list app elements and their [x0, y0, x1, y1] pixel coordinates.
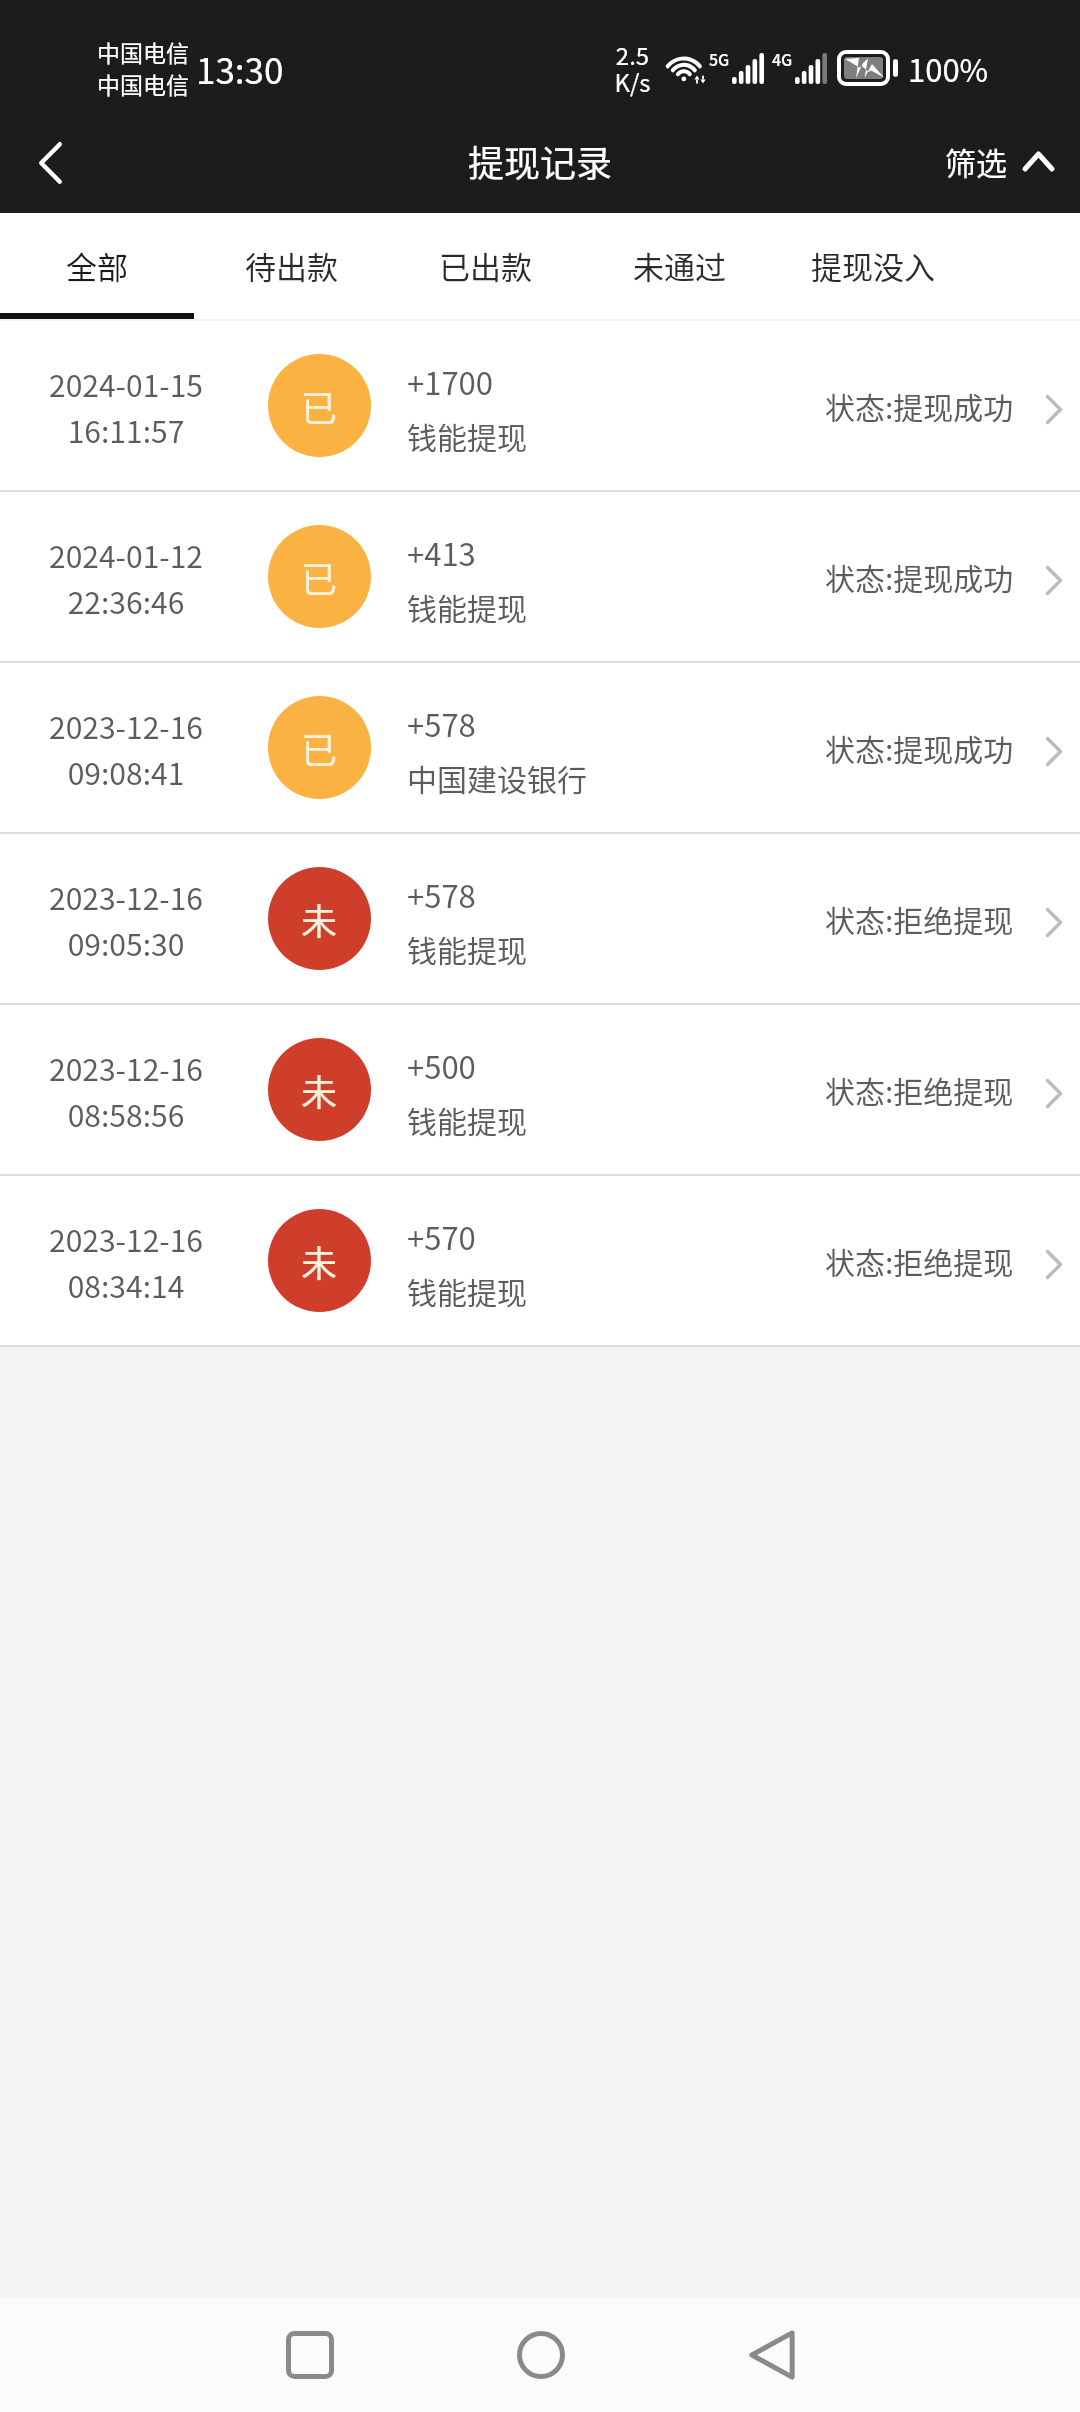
staticText: 中国电信 中国电信 — [97, 35, 189, 101]
button[interactable]: Recents — [194, 2298, 425, 2412]
staticText: +500 — [407, 1043, 476, 1088]
button[interactable]: 提现没入 — [776, 213, 970, 321]
staticText: 5G — [709, 47, 730, 70]
staticText: +578 — [407, 872, 476, 917]
staticText: 中国建设银行 — [407, 756, 587, 799]
staticText: 筛选 — [945, 139, 1007, 184]
staticText: 2023-12-16 08:34:14 — [0, 1217, 252, 1306]
staticText: 提现记录 — [468, 135, 613, 187]
staticText: 状态:提现成功 — [825, 384, 1014, 427]
staticText: 13:30 — [196, 43, 284, 94]
staticText: 钱能提现 — [407, 927, 527, 970]
button[interactable]: 2024-01-15 16:11:57 — [0, 321, 1080, 492]
staticText: 提现没入 — [811, 243, 935, 288]
button[interactable]: Home — [425, 2298, 656, 2412]
staticText: 已 — [301, 380, 338, 432]
staticText: 未 — [301, 1064, 338, 1116]
staticText: +413 — [407, 530, 476, 575]
button[interactable]: 已出款 — [388, 213, 582, 321]
button[interactable]: 2024-01-12 22:36:46 — [0, 492, 1080, 663]
staticText: 2023-12-16 08:58:56 — [0, 1046, 252, 1135]
staticText: 2023-12-16 09:08:41 — [0, 704, 252, 793]
staticText: 未 — [301, 893, 338, 945]
staticText: 100% — [908, 46, 989, 91]
button[interactable]: Back — [656, 2298, 887, 2412]
staticText: +578 — [407, 701, 476, 746]
button[interactable]: 2023-12-16 08:58:56 — [0, 1005, 1080, 1176]
staticText: 钱能提现 — [407, 1269, 527, 1312]
button[interactable]: 全部 — [0, 213, 194, 321]
staticText: 已 — [301, 551, 338, 603]
button[interactable]: 2023-12-16 09:08:41 — [0, 663, 1080, 834]
staticText: 状态:拒绝提现 — [825, 1239, 1014, 1282]
staticText: 状态:提现成功 — [825, 726, 1014, 769]
button[interactable]: 未通过 — [582, 213, 776, 321]
staticText: 待出款 — [245, 243, 338, 288]
staticText: 2023-12-16 09:05:30 — [0, 875, 252, 964]
staticText: 4G — [772, 47, 793, 70]
staticText: 2024-01-15 16:11:57 — [0, 362, 252, 451]
staticText: 2.5 K/s — [614, 37, 651, 99]
staticText: 钱能提现 — [407, 414, 527, 457]
staticText: 2024-01-12 22:36:46 — [0, 533, 252, 622]
staticText: 未通过 — [633, 243, 726, 288]
button[interactable]: 2023-12-16 08:34:14 — [0, 1176, 1080, 1347]
staticText: 未 — [301, 1235, 338, 1287]
staticText: 状态:拒绝提现 — [825, 897, 1014, 940]
staticText: 状态:拒绝提现 — [825, 1068, 1014, 1111]
staticText: 已 — [301, 722, 338, 774]
staticText: 全部 — [66, 243, 128, 288]
button[interactable]: 筛选 — [929, 127, 1080, 196]
staticText: +1700 — [407, 359, 494, 404]
staticText: 钱能提现 — [407, 585, 527, 628]
staticText: 状态:提现成功 — [825, 555, 1014, 598]
button[interactable]: 待出款 — [194, 213, 388, 321]
button[interactable]: 2023-12-16 09:05:30 — [0, 834, 1080, 1005]
button[interactable]: Back — [0, 113, 100, 213]
staticText: 钱能提现 — [407, 1098, 527, 1141]
staticText: 已出款 — [439, 243, 532, 288]
staticText: +570 — [407, 1214, 476, 1259]
